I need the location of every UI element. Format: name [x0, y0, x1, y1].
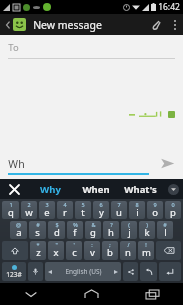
staticText: 2	[27, 201, 31, 208]
button[interactable]: 6	[93, 201, 109, 219]
staticText: #	[163, 221, 167, 228]
staticText: p	[170, 206, 176, 219]
staticText: h	[108, 226, 114, 239]
button[interactable]: /	[120, 241, 136, 260]
staticText: u	[116, 206, 122, 219]
button[interactable]: ?	[103, 221, 119, 239]
button[interactable]: 4	[57, 201, 73, 219]
staticText: (	[128, 221, 130, 228]
staticText: /	[127, 241, 130, 248]
staticText: @	[16, 221, 21, 228]
staticText: *	[36, 241, 40, 248]
button[interactable]: Home	[61, 283, 122, 305]
staticText: :	[91, 241, 93, 248]
staticText: g	[90, 226, 96, 239]
staticText: b	[107, 246, 113, 259]
staticText: k	[144, 226, 150, 239]
button[interactable]: More options	[167, 14, 183, 35]
staticText: !	[145, 241, 147, 248]
button[interactable]: Symbols	[2, 262, 26, 281]
staticText: &	[91, 221, 96, 228]
button[interactable]: Send	[155, 151, 179, 175]
staticText: New message	[33, 18, 102, 32]
button[interactable]: Undo	[140, 262, 157, 281]
button[interactable]: Shift	[2, 241, 28, 260]
button[interactable]: Wh	[8, 157, 149, 175]
staticText: s	[35, 226, 40, 239]
button[interactable]: Back	[0, 14, 16, 35]
staticText: English (US)	[65, 267, 102, 276]
staticText: d	[54, 226, 60, 239]
staticText: "	[55, 241, 58, 248]
button[interactable]: #	[157, 221, 173, 239]
staticText: 0	[171, 201, 175, 208]
button[interactable]: English (US)	[45, 262, 121, 281]
button[interactable]: 8	[129, 201, 145, 219]
staticText: ;	[109, 241, 111, 248]
button[interactable]: Recent apps	[122, 283, 183, 305]
staticText: 1	[9, 201, 13, 208]
staticText: x	[53, 246, 59, 259]
button[interactable]: Voice input	[28, 262, 43, 281]
button[interactable]: Hide keyboard	[0, 283, 61, 305]
staticText: i	[136, 206, 139, 219]
button[interactable]: Expand suggestions	[163, 179, 183, 199]
staticText: e	[44, 206, 50, 219]
staticText: 3	[45, 201, 49, 208]
staticText: %	[73, 221, 78, 228]
staticText: 9	[153, 201, 157, 208]
button[interactable]: What's	[118, 179, 163, 199]
button[interactable]: $	[48, 221, 65, 239]
button[interactable]: (	[121, 221, 137, 239]
staticText: '	[73, 241, 75, 248]
staticText: Why	[40, 183, 61, 196]
button[interactable]: 7	[111, 201, 127, 219]
staticText: 123#	[6, 270, 22, 279]
staticText: 7	[117, 201, 121, 208]
staticText: a	[16, 226, 22, 239]
button[interactable]: !	[138, 241, 154, 260]
button[interactable]: 5	[75, 201, 91, 219]
button[interactable]: @	[10, 221, 27, 239]
button[interactable]: *	[30, 241, 46, 260]
staticText: j	[128, 226, 131, 239]
staticText: n	[125, 246, 131, 259]
button[interactable]: Settings	[123, 262, 138, 281]
staticText: v	[90, 246, 95, 259]
staticText: y	[99, 206, 104, 219]
staticText: What's	[124, 183, 157, 196]
staticText: #	[36, 221, 40, 228]
button[interactable]: 1	[2, 201, 19, 219]
button[interactable]: When	[73, 179, 118, 199]
button[interactable]: Why	[28, 179, 73, 199]
button[interactable]: 3	[39, 201, 55, 219]
staticText: ?	[110, 221, 113, 228]
staticText: m	[142, 246, 151, 259]
staticText: f	[73, 226, 77, 239]
staticText: q	[8, 206, 14, 219]
button[interactable]: Close suggestions	[0, 179, 28, 199]
button[interactable]: :	[84, 241, 100, 260]
button[interactable]: ;	[102, 241, 118, 260]
staticText: 5	[81, 201, 85, 208]
button[interactable]: "	[48, 241, 64, 260]
button[interactable]: '	[66, 241, 82, 260]
staticText: r	[63, 206, 67, 219]
button[interactable]: %	[67, 221, 83, 239]
staticText: w	[25, 206, 33, 219]
button[interactable]: #	[29, 221, 46, 239]
button[interactable]: To	[8, 35, 175, 59]
button[interactable]: 2	[21, 201, 37, 219]
button[interactable]: )	[139, 221, 155, 239]
button[interactable]: Enter	[159, 262, 181, 281]
staticText: To	[8, 41, 19, 54]
button[interactable]: 9	[147, 201, 163, 219]
staticText: o	[152, 206, 158, 219]
button[interactable]: 0	[165, 201, 181, 219]
staticText: When	[82, 183, 110, 196]
button[interactable]: Backspace	[156, 241, 181, 260]
button[interactable]: Attach	[145, 14, 167, 35]
staticText: 4	[63, 201, 67, 208]
staticText: 8	[135, 201, 139, 208]
button[interactable]: &	[85, 221, 101, 239]
